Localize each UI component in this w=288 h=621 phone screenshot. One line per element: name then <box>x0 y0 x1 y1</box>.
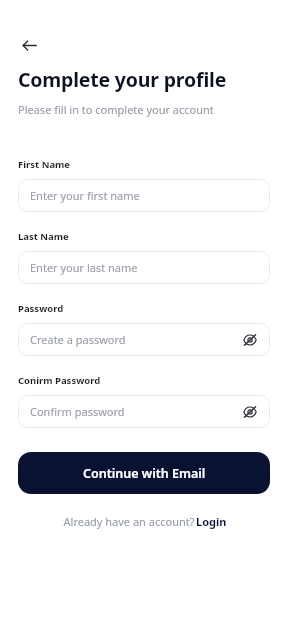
staticText: Create a password <box>30 332 240 347</box>
button[interactable]: Continue with Email <box>18 452 270 494</box>
button[interactable]: Back <box>18 34 40 56</box>
button[interactable]: Show password <box>240 330 260 350</box>
button[interactable]: Create a password <box>18 323 270 356</box>
staticText: Enter your last name <box>30 260 260 275</box>
button[interactable]: Enter your last name <box>18 251 270 284</box>
staticText: Last Name <box>18 230 69 243</box>
staticText: First Name <box>18 158 71 171</box>
staticText: Continue with Email <box>83 465 206 482</box>
staticText: Login <box>196 514 227 529</box>
staticText: Complete your profile <box>18 66 227 93</box>
button[interactable]: Show password <box>240 402 260 422</box>
staticText: Enter your first name <box>30 188 260 203</box>
button[interactable]: Enter your first name <box>18 179 270 212</box>
staticText: Already have an account? <box>62 514 196 529</box>
button[interactable]: Login <box>196 514 227 529</box>
button[interactable]: Confirm password <box>18 395 270 428</box>
staticText: Conirm Password <box>18 374 101 387</box>
staticText: Please fill in to complete your account <box>18 102 214 117</box>
staticText: Confirm password <box>30 404 240 419</box>
staticText: Password <box>18 302 64 315</box>
